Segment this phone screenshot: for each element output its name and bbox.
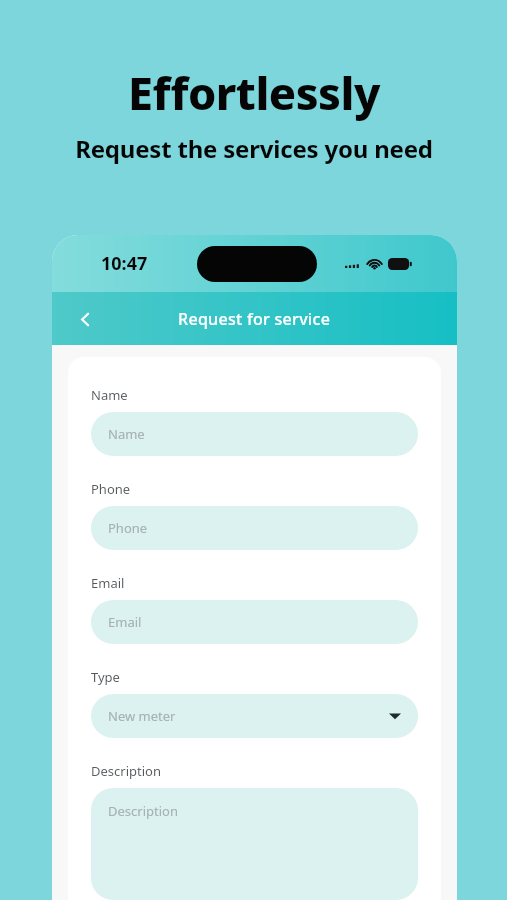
- button[interactable]: Name: [91, 412, 418, 456]
- staticText: Email: [91, 574, 125, 592]
- button[interactable]: Description: [91, 788, 418, 900]
- staticText: Email: [108, 613, 142, 631]
- staticText: New meter: [108, 707, 176, 725]
- staticText: Name: [91, 386, 128, 404]
- staticText: Request for service: [178, 308, 331, 330]
- staticText: Phone: [108, 519, 148, 537]
- staticText: Description: [91, 762, 161, 780]
- staticText: Phone: [91, 480, 131, 498]
- staticText: Name: [108, 425, 145, 443]
- staticText: Request the services you need: [75, 132, 433, 165]
- staticText: Description: [108, 802, 178, 820]
- staticText: 10:47: [101, 251, 148, 276]
- staticText: Effortlessly: [128, 62, 380, 123]
- button[interactable]: New meter: [91, 694, 418, 738]
- button[interactable]: Email: [91, 600, 418, 644]
- button[interactable]: Phone: [91, 506, 418, 550]
- button[interactable]: Back: [66, 300, 104, 338]
- staticText: Type: [91, 668, 120, 686]
